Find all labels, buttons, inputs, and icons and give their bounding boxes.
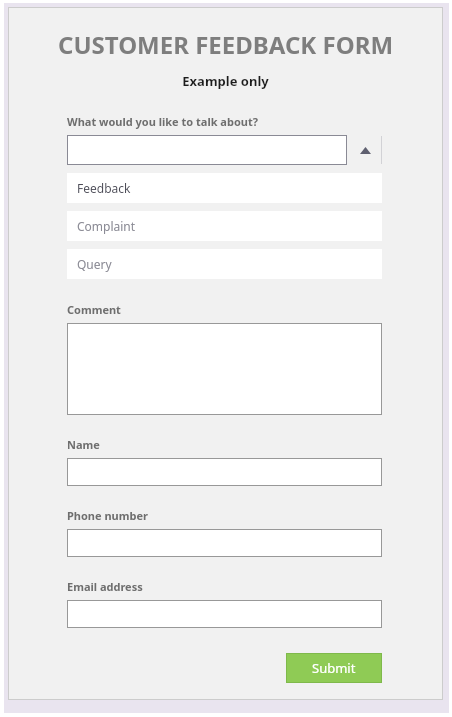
- staticText: Comment: [67, 302, 121, 317]
- button[interactable]: [67, 323, 382, 415]
- staticText: Feedback: [77, 180, 131, 196]
- button[interactable]: [67, 458, 382, 486]
- staticText: Email address: [67, 579, 143, 594]
- button[interactable]: Collapse options: [350, 135, 381, 165]
- button[interactable]: Query: [67, 249, 382, 279]
- staticText: Name: [67, 437, 100, 452]
- button[interactable]: [67, 600, 382, 628]
- staticText: Query: [77, 256, 112, 272]
- staticText: Submit: [312, 659, 356, 677]
- button[interactable]: [67, 135, 347, 165]
- staticText: Phone number: [67, 508, 148, 523]
- button[interactable]: [67, 529, 382, 557]
- staticText: CUSTOMER FEEDBACK FORM: [8, 28, 443, 61]
- button[interactable]: Complaint: [67, 211, 382, 241]
- staticText: Example only: [8, 72, 443, 90]
- button[interactable]: Submit: [286, 653, 382, 683]
- staticText: Complaint: [77, 218, 136, 234]
- staticText: What would you like to talk about?: [67, 114, 258, 129]
- button[interactable]: Feedback: [67, 173, 382, 203]
